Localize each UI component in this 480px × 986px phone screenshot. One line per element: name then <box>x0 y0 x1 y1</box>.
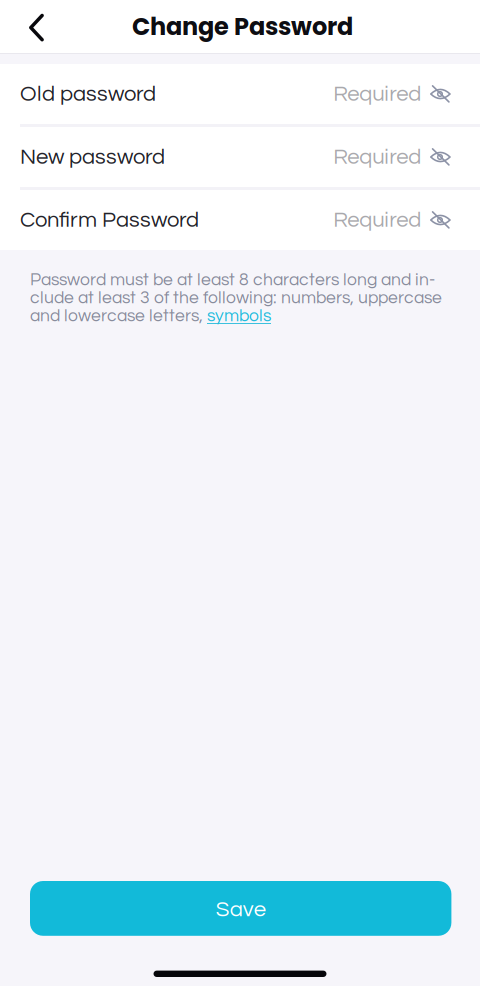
button[interactable]: Old password <box>0 64 480 124</box>
button[interactable]: Save <box>30 881 451 936</box>
staticText: clude at least 3 of the following: numbe… <box>30 289 442 307</box>
staticText: Required <box>333 209 421 231</box>
button[interactable]: Confirm Password <box>0 190 480 250</box>
staticText: symbols <box>207 307 271 325</box>
staticText: Password must be at least 8 characters l… <box>30 271 435 289</box>
staticText: Required <box>333 83 421 105</box>
staticText: Save <box>216 898 266 921</box>
button[interactable]: New password <box>0 127 480 187</box>
staticText: Confirm Password <box>20 209 199 231</box>
button[interactable]: symbols <box>207 307 271 325</box>
button[interactable]: Back <box>0 0 62 53</box>
staticText: Required <box>333 146 421 168</box>
staticText: and lowercase letters, <box>30 307 207 325</box>
staticText: Old password <box>20 83 156 105</box>
staticText: Change Password <box>132 10 353 43</box>
staticText: New password <box>20 146 165 168</box>
